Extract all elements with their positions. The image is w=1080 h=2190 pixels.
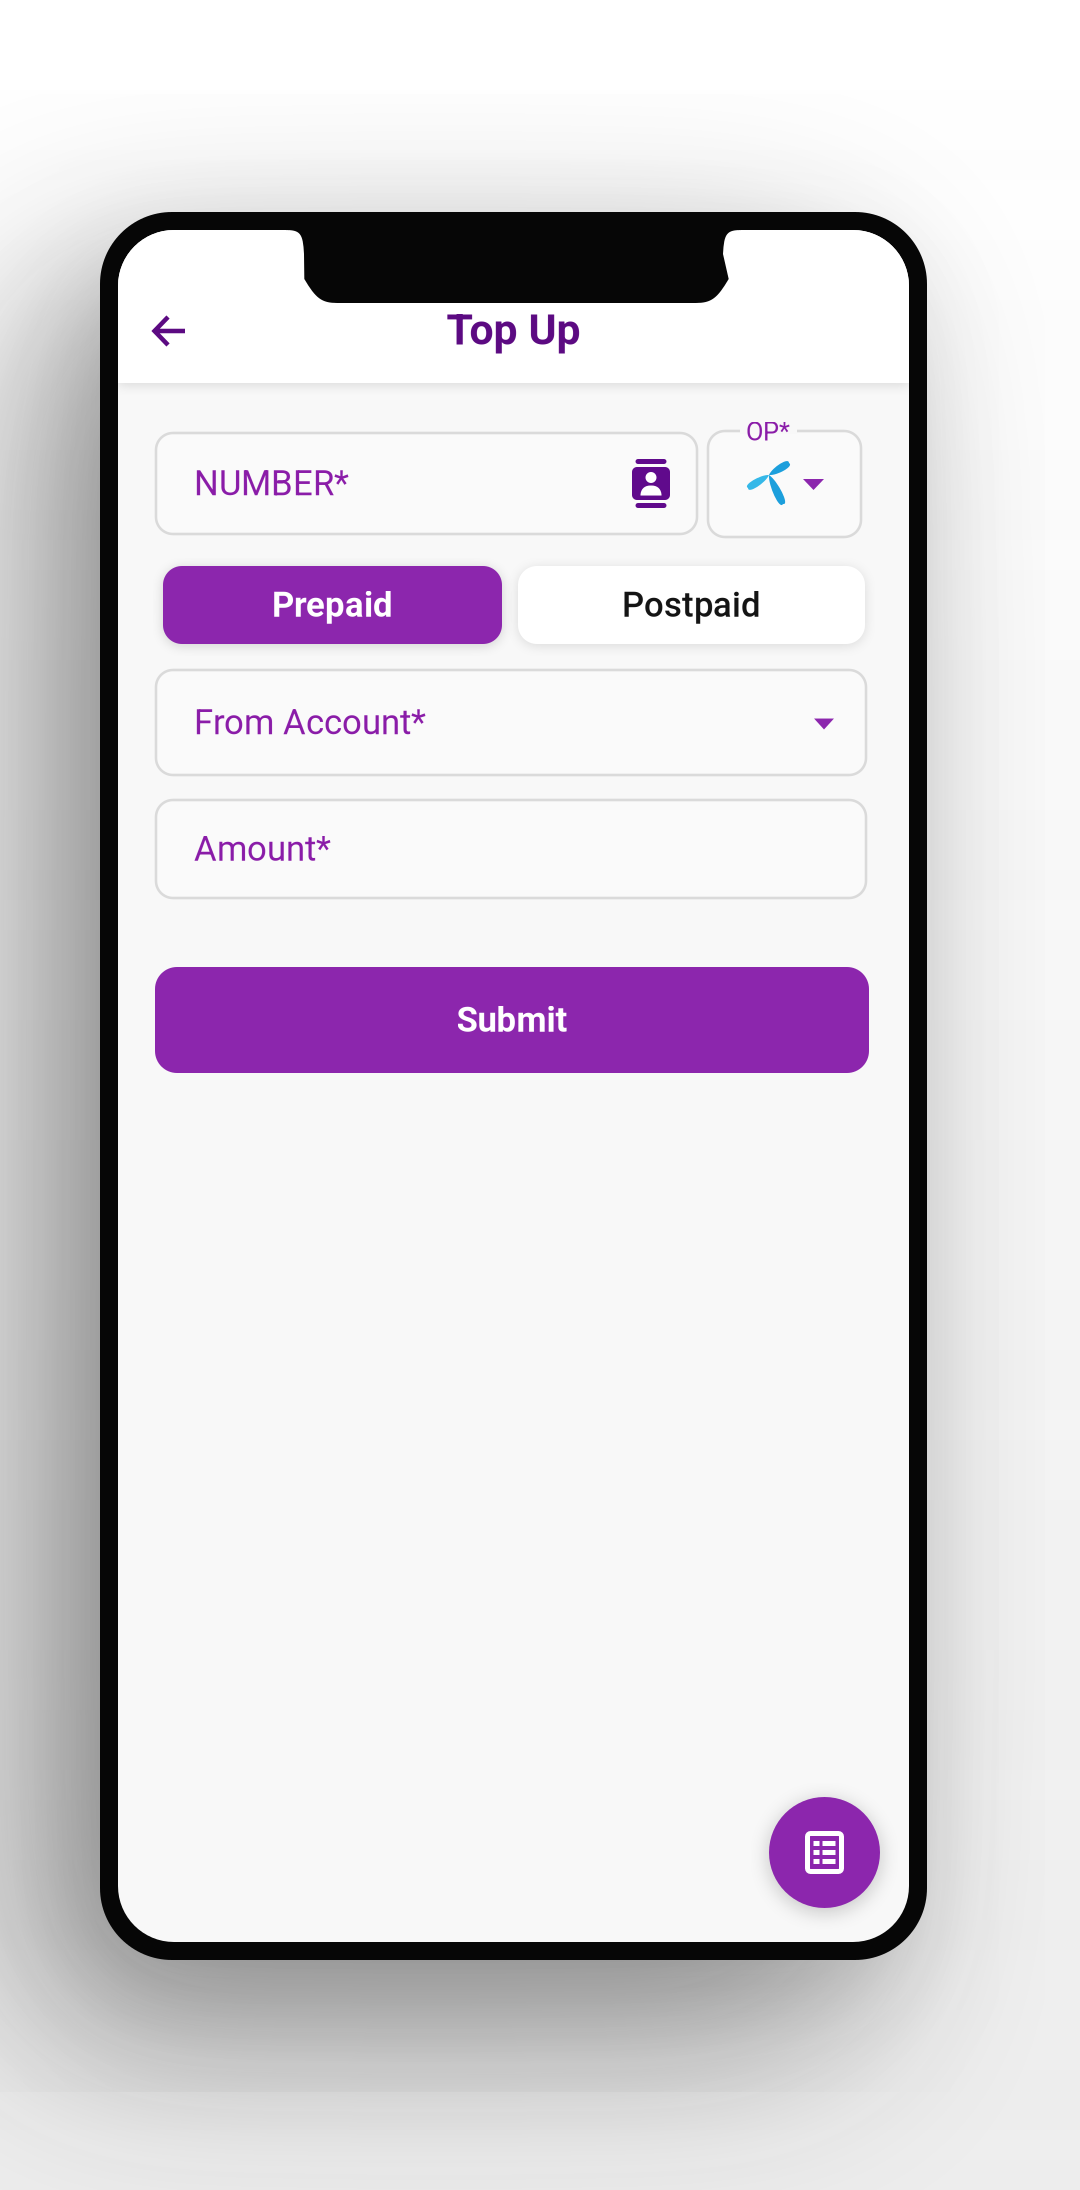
button[interactable]: Amount* [156,800,866,898]
staticText: From Account* [194,702,426,743]
button[interactable]: Postpaid [518,566,865,644]
staticText: OP* [746,417,790,447]
button[interactable]: Back [132,297,208,365]
staticText: Submit [456,1000,567,1040]
button[interactable]: From Account* [156,670,866,775]
button[interactable]: Pick from contacts [618,433,684,534]
staticText: NUMBER* [194,463,349,504]
button[interactable]: Operator [708,431,861,537]
staticText: Amount* [194,829,331,869]
staticText: Prepaid [272,585,393,625]
button[interactable]: Submit [155,967,869,1073]
button[interactable]: Prepaid [163,566,502,644]
button[interactable]: NUMBER* [156,433,697,534]
staticText: Postpaid [622,585,761,625]
staticText: Top Up [446,305,580,355]
button[interactable]: Transaction history [769,1797,880,1908]
